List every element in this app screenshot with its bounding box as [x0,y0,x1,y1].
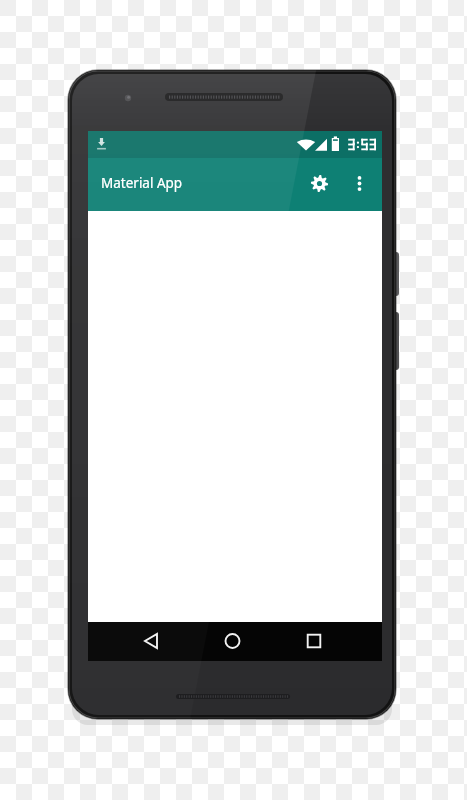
staticText: Material App [101,174,183,192]
button[interactable]: Home [212,622,252,661]
button[interactable]: More options [345,167,373,195]
button[interactable]: Recent apps [294,622,334,661]
button[interactable]: Settings [303,167,335,199]
button[interactable]: Back [131,622,171,661]
